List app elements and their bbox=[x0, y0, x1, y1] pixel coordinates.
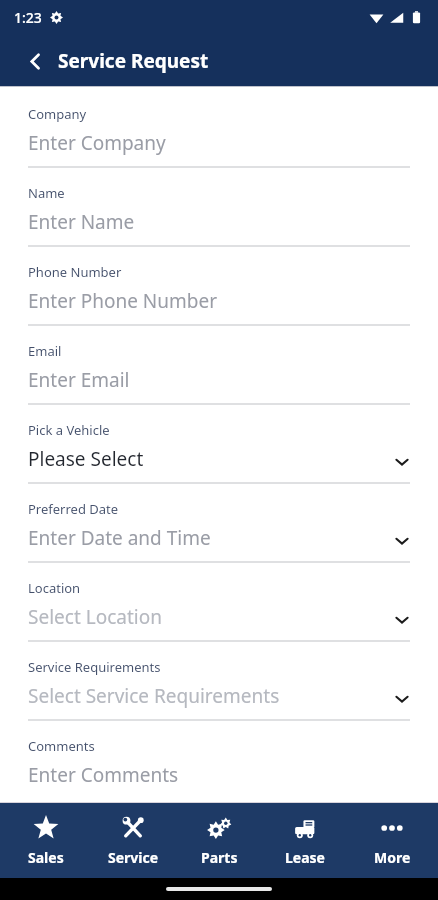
button[interactable]: Back bbox=[18, 44, 52, 78]
button[interactable]: More bbox=[352, 803, 432, 878]
staticText: Service bbox=[108, 848, 159, 867]
staticText: Service Requirements bbox=[28, 658, 161, 676]
staticText: Select Service Requirements bbox=[28, 683, 280, 709]
button[interactable]: Service bbox=[93, 803, 173, 878]
staticText: Email bbox=[28, 342, 62, 360]
staticText: Please Select bbox=[28, 446, 144, 472]
button[interactable]: Name bbox=[0, 182, 438, 261]
staticText: Preferred Date bbox=[28, 500, 119, 518]
staticText: Enter Name bbox=[28, 209, 135, 235]
staticText: Company bbox=[28, 105, 87, 123]
staticText: Parts bbox=[201, 848, 238, 867]
staticText: Sales bbox=[28, 848, 64, 867]
button[interactable]: Company bbox=[0, 103, 438, 182]
staticText: Select Location bbox=[28, 604, 162, 630]
button[interactable]: Service Requirements bbox=[0, 656, 438, 735]
staticText: Enter Date and Time bbox=[28, 525, 211, 551]
button[interactable]: Lease bbox=[265, 803, 345, 878]
staticText: Name bbox=[28, 184, 65, 202]
button[interactable]: Pick a Vehicle bbox=[0, 419, 438, 498]
staticText: Enter Phone Number bbox=[28, 288, 217, 314]
button[interactable]: Sales bbox=[6, 803, 86, 878]
staticText: Pick a Vehicle bbox=[28, 421, 110, 439]
button[interactable]: Phone Number bbox=[0, 261, 438, 340]
staticText: 1:23 bbox=[14, 8, 42, 27]
button[interactable]: Email bbox=[0, 340, 438, 419]
staticText: Enter Email bbox=[28, 367, 130, 393]
button[interactable]: Parts bbox=[179, 803, 259, 878]
staticText: Enter Comments bbox=[28, 762, 179, 788]
staticText: More bbox=[374, 848, 411, 867]
staticText: Location bbox=[28, 579, 81, 597]
staticText: Service Request bbox=[58, 48, 209, 74]
staticText: Comments bbox=[28, 737, 95, 755]
staticText: Phone Number bbox=[28, 263, 122, 281]
button[interactable]: Preferred Date bbox=[0, 498, 438, 577]
button[interactable]: Comments bbox=[0, 735, 438, 798]
button[interactable]: Location bbox=[0, 577, 438, 656]
staticText: Lease bbox=[285, 848, 325, 867]
staticText: Enter Company bbox=[28, 130, 166, 156]
